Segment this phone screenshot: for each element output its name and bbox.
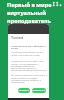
button[interactable]: Принять все bbox=[32, 88, 46, 93]
staticText: преподаватель bbox=[7, 17, 51, 25]
other: Status icons bbox=[52, 1, 62, 7]
staticText: Продолжая использовать наш сервис, вы со… bbox=[11, 60, 47, 72]
button[interactable]: Политика конфиденциальности bbox=[11, 36, 47, 40]
staticText: Первый в мире bbox=[7, 1, 52, 9]
staticText: Принять все bbox=[32, 89, 46, 92]
staticText: Какие данные мы собираем и зачем bbox=[11, 44, 47, 50]
button[interactable]: Настроить bbox=[18, 88, 30, 93]
staticText: Настроить bbox=[18, 89, 30, 92]
staticText: Политика конфиденциальности bbox=[11, 36, 47, 40]
staticText: виртуальный bbox=[7, 9, 46, 17]
staticText: Вы можете изменить настройки в любой мом… bbox=[11, 74, 47, 84]
staticText: Мы используем файлы cookie, чтобы сайт р… bbox=[11, 51, 47, 57]
